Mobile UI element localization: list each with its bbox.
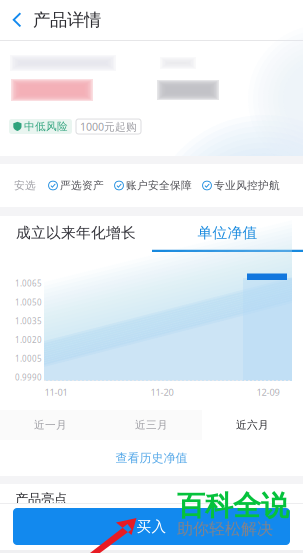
staticText: 单位净值 bbox=[197, 224, 257, 242]
staticText: 查看历史净值 bbox=[115, 451, 187, 465]
button[interactable]: 近六月 bbox=[202, 410, 303, 440]
staticText: 近三月 bbox=[135, 418, 168, 431]
button[interactable]: 近三月 bbox=[101, 410, 202, 440]
staticText: 产品亮点 bbox=[15, 491, 67, 507]
button[interactable]: 买入 bbox=[13, 508, 290, 545]
button[interactable]: 近一月 bbox=[0, 410, 101, 440]
staticText: 1.0020 bbox=[15, 335, 42, 345]
staticText: 近一月 bbox=[34, 418, 67, 431]
staticText: 安选 bbox=[14, 179, 36, 192]
staticText: 专业风控护航 bbox=[214, 179, 280, 192]
staticText: 1.0065 bbox=[15, 278, 42, 289]
staticText: 助你轻松解决 bbox=[177, 519, 273, 539]
button[interactable]: Back bbox=[0, 0, 33, 40]
staticText: 买入 bbox=[136, 517, 166, 535]
button[interactable]: 成立以来年化增长 bbox=[0, 216, 152, 252]
staticText: 成立以来年化增长 bbox=[16, 224, 136, 242]
staticText: 中低风险 bbox=[24, 120, 68, 133]
button[interactable]: 单位净值 bbox=[152, 216, 303, 252]
staticText: 严选资产 bbox=[60, 179, 104, 192]
staticText: 12-09 bbox=[256, 386, 279, 398]
staticText: 近六月 bbox=[236, 418, 269, 431]
staticText: 1000元起购 bbox=[80, 119, 137, 134]
staticText: 1.0050 bbox=[15, 297, 42, 308]
button[interactable]: 查看历史净值 bbox=[0, 440, 303, 476]
staticText: 账户安全保障 bbox=[126, 179, 192, 192]
staticText: 0.9990 bbox=[15, 372, 42, 383]
staticText: 1.0005 bbox=[15, 353, 42, 364]
staticText: 百科全说 bbox=[177, 489, 289, 523]
staticText: 11-01 bbox=[44, 386, 67, 398]
staticText: 1.0035 bbox=[15, 316, 42, 326]
staticText: 产品详情 bbox=[33, 9, 101, 31]
staticText: 11-20 bbox=[150, 386, 173, 398]
